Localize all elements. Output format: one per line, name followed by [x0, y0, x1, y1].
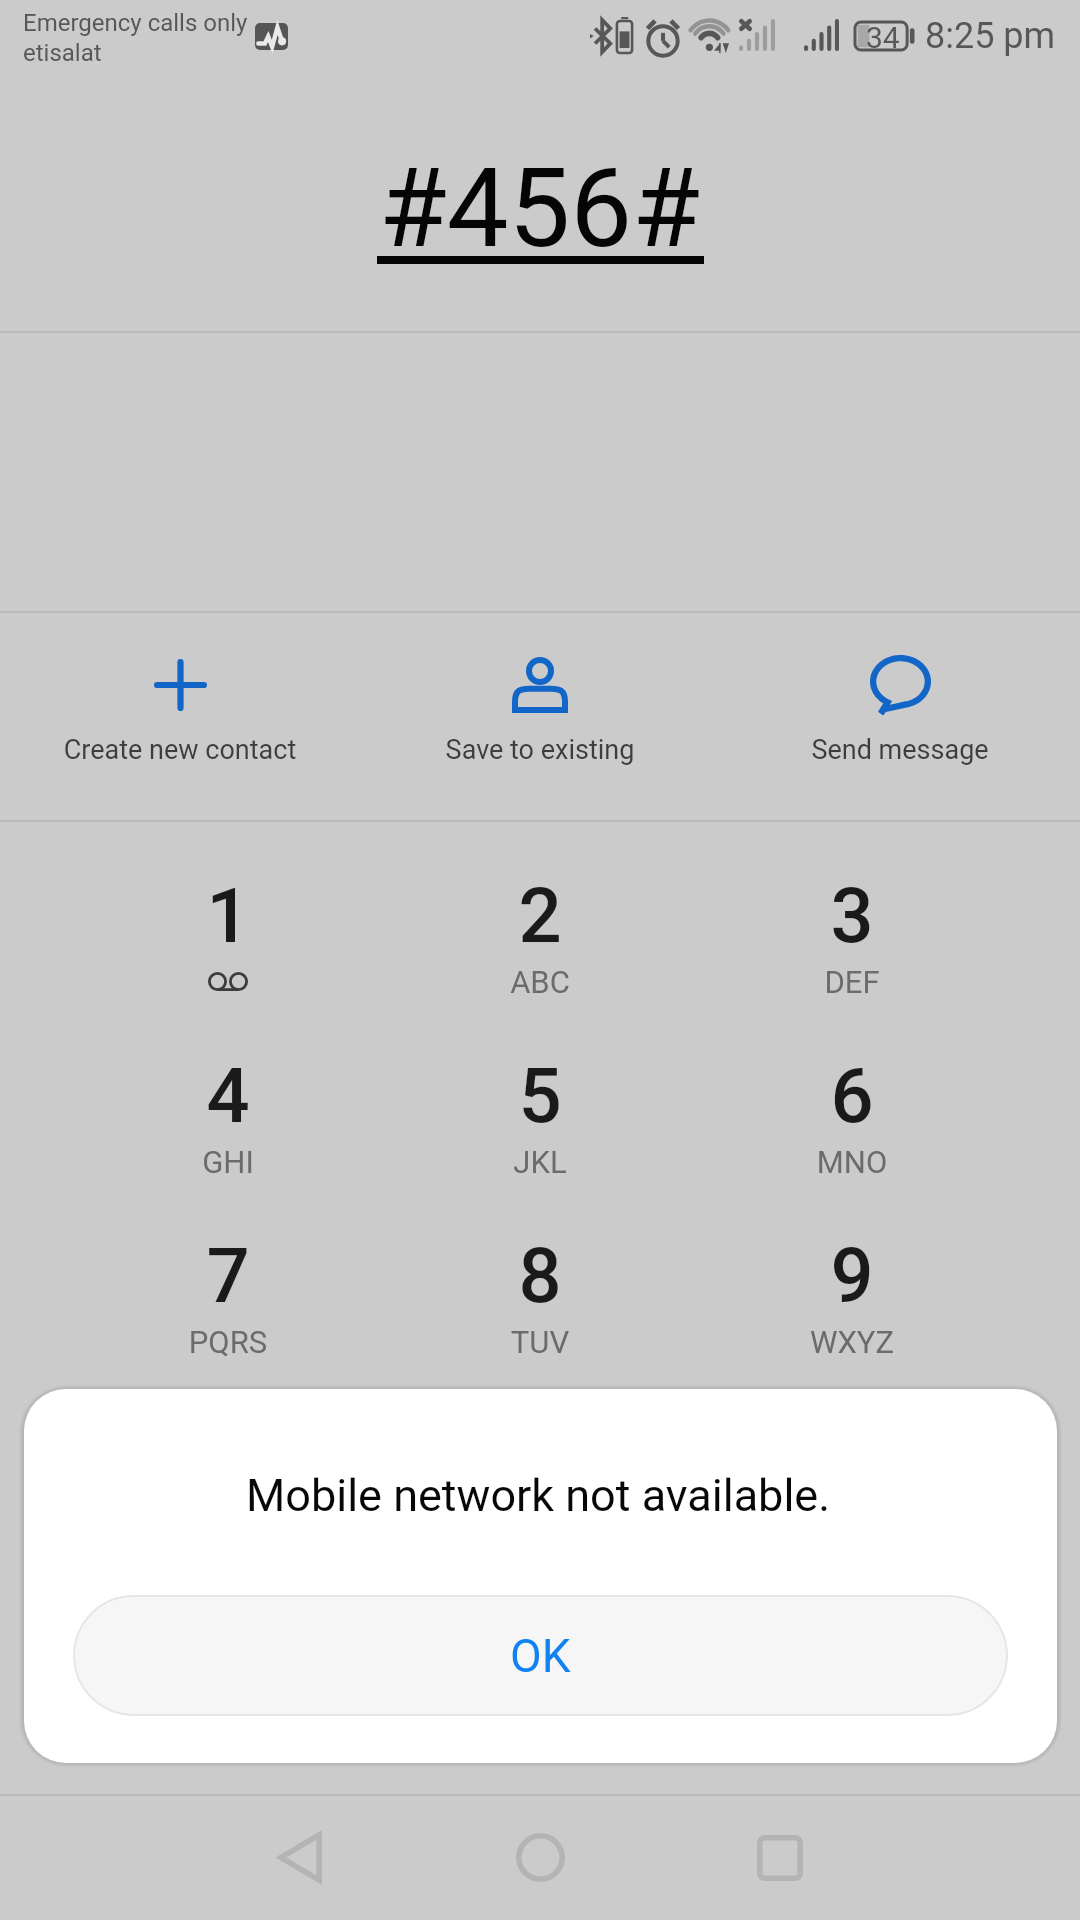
staticText: GHI — [78, 1144, 378, 1180]
button[interactable]: 1 — [78, 854, 378, 1034]
staticText: 7 — [78, 1231, 378, 1320]
staticText: OK — [510, 1629, 571, 1683]
button[interactable]: 4 — [78, 1034, 378, 1214]
staticText: Send message — [720, 734, 1080, 766]
staticText: #456# — [379, 144, 700, 273]
staticText: Emergency calls only — [23, 9, 248, 37]
staticText: WXYZ — [702, 1324, 1002, 1360]
button[interactable]: 3 — [702, 854, 1002, 1034]
staticText: JKL — [390, 1144, 690, 1180]
staticText: 8 — [390, 1231, 690, 1320]
staticText: 5 — [390, 1051, 690, 1140]
button[interactable]: Create new contact — [0, 612, 360, 819]
staticText: TUV — [390, 1324, 690, 1360]
staticText: 3 — [702, 871, 1002, 960]
staticText: 4 — [78, 1051, 378, 1140]
button[interactable]: Home — [420, 1795, 660, 1920]
staticText: 34 — [866, 20, 900, 55]
button[interactable]: 2 — [390, 854, 690, 1034]
button[interactable]: OK — [73, 1595, 1008, 1716]
staticText: Mobile network not available. — [246, 1469, 831, 1522]
staticText: MNO — [702, 1144, 1002, 1180]
staticText: DEF — [702, 964, 1002, 1000]
staticText: PQRS — [78, 1324, 378, 1360]
staticText: etisalat — [23, 39, 102, 67]
button[interactable]: Back — [180, 1795, 420, 1920]
button[interactable]: Send message — [720, 612, 1080, 819]
button[interactable]: 6 — [702, 1034, 1002, 1214]
button[interactable]: 8 — [390, 1214, 690, 1394]
button[interactable]: 5 — [390, 1034, 690, 1214]
staticText: ABC — [390, 964, 690, 1000]
staticText: 2 — [390, 871, 690, 960]
button[interactable]: 9 — [702, 1214, 1002, 1394]
staticText: 6 — [702, 1051, 1002, 1140]
staticText: 9 — [702, 1231, 1002, 1320]
staticText: 8:25 pm — [925, 15, 1056, 57]
staticText: 1 — [78, 871, 378, 960]
button[interactable]: Save to existing — [360, 612, 720, 819]
button[interactable]: Recents — [660, 1795, 900, 1920]
staticText: Save to existing — [360, 734, 720, 766]
staticText: Create new contact — [0, 734, 360, 766]
button[interactable]: 7 — [78, 1214, 378, 1394]
